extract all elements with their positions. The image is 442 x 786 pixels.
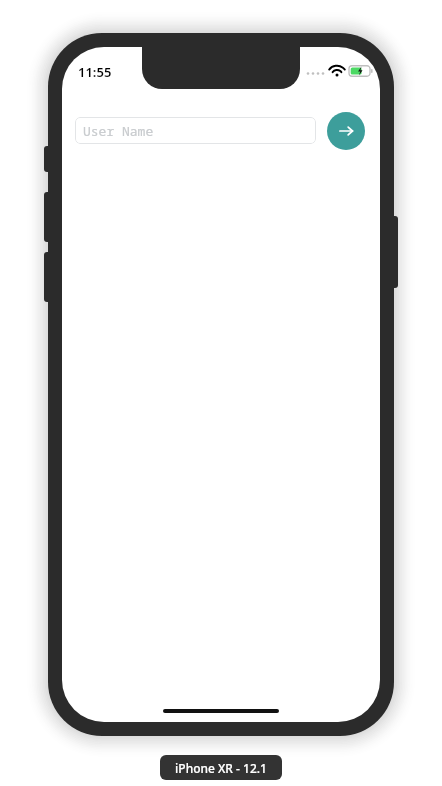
button[interactable]: User Name (75, 117, 316, 144)
staticText: iPhone XR - 12.1 (175, 760, 267, 776)
staticText: 11:55 (78, 63, 112, 81)
staticText: User Name (83, 122, 154, 140)
button[interactable]: Submit (327, 112, 365, 150)
